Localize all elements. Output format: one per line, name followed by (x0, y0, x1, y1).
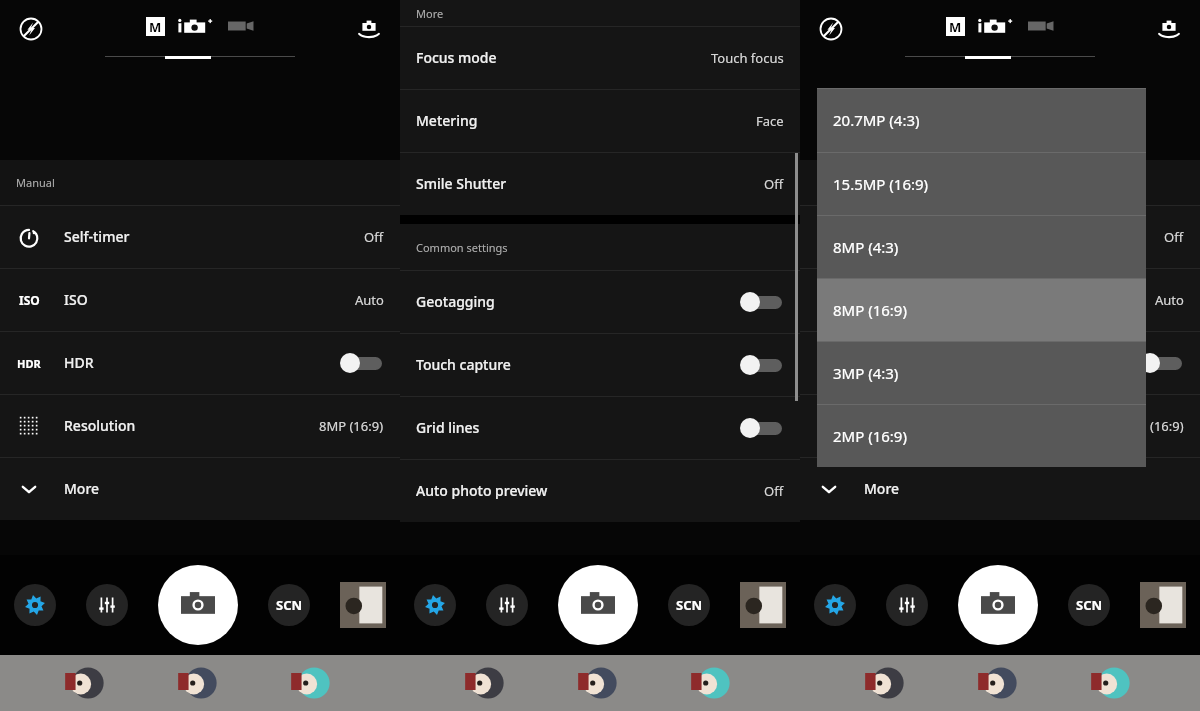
button[interactable]: Shutter (558, 565, 638, 645)
button[interactable]: Video (1028, 18, 1054, 34)
staticText: 15.5MP (16:9) (833, 174, 929, 194)
button[interactable]: Gallery (740, 582, 786, 628)
staticText: HDR (817, 356, 841, 371)
button[interactable]: M (146, 17, 165, 36)
staticText: Auto photo preview (416, 481, 548, 500)
staticText: Manual (816, 175, 855, 190)
staticText: Face (756, 112, 784, 130)
button[interactable]: SCN (268, 584, 310, 626)
staticText: M (949, 18, 962, 36)
button[interactable]: Focus mode (400, 26, 800, 89)
button[interactable]: SCN (668, 584, 710, 626)
button[interactable]: 20.7MP (4:3) (817, 88, 1146, 152)
button[interactable]: Touch capture (400, 333, 800, 396)
button[interactable]: ISO (800, 268, 1200, 331)
staticText: Touch focus (711, 49, 784, 67)
button[interactable]: Settings (14, 584, 56, 626)
button[interactable]: Superior auto (177, 16, 221, 36)
staticText: (16:9) (1150, 417, 1184, 435)
staticText: HDR (64, 353, 94, 372)
staticText: 8MP (16:9) (833, 300, 907, 320)
button[interactable]: Settings (814, 584, 856, 626)
button[interactable]: Auto photo preview (400, 459, 800, 522)
button[interactable]: Shutter (958, 565, 1038, 645)
button[interactable]: Off (800, 205, 1200, 268)
staticText: Smile Shutter (416, 174, 507, 193)
button[interactable]: 8MP (4:3) (817, 215, 1146, 278)
button[interactable]: Superior auto (977, 16, 1021, 36)
staticText: ISO (819, 292, 840, 308)
button[interactable]: Metering (400, 89, 800, 152)
staticText: 20.7MP (4:3) (833, 110, 920, 130)
button[interactable]: Switch camera (354, 14, 384, 44)
staticText: 8MP (4:3) (833, 237, 899, 257)
button[interactable]: Flash off (816, 14, 846, 44)
staticText: Off (1164, 228, 1184, 246)
staticText: Self-timer (64, 227, 130, 246)
staticText: More (416, 6, 444, 21)
staticText: More (864, 479, 900, 498)
button[interactable]: More (800, 457, 1200, 520)
staticText: ISO (19, 292, 40, 308)
button[interactable]: Adjust (86, 584, 128, 626)
staticText: SCN (276, 596, 303, 614)
button[interactable]: Resolution (0, 394, 400, 457)
staticText: Off (364, 228, 384, 246)
staticText: Resolution (64, 416, 136, 435)
staticText: Manual (16, 175, 55, 190)
button[interactable]: 3MP (4:3) (817, 341, 1146, 404)
staticText: Auto (355, 291, 384, 309)
button[interactable]: Adjust (886, 584, 928, 626)
button[interactable]: Gallery (1140, 582, 1186, 628)
button[interactable]: 2MP (16:9) (817, 404, 1146, 467)
staticText: M (149, 18, 162, 36)
button[interactable]: Geotagging (400, 270, 800, 333)
button[interactable]: Shutter (158, 565, 238, 645)
staticText: 2MP (16:9) (833, 426, 907, 446)
button[interactable]: Self-timer (0, 205, 400, 268)
staticText: Geotagging (416, 292, 495, 311)
staticText: SCN (1076, 596, 1103, 614)
button[interactable]: HDR (800, 331, 1200, 394)
staticText: More (64, 479, 100, 498)
button[interactable]: HDR (0, 331, 400, 394)
staticText: HDR (17, 356, 41, 371)
staticText: ISO (64, 290, 88, 309)
button[interactable]: 15.5MP (16:9) (817, 152, 1146, 215)
staticText: Focus mode (416, 48, 497, 67)
staticText: Off (764, 482, 784, 500)
button[interactable]: Flash off (16, 14, 46, 44)
button[interactable]: More (0, 457, 400, 520)
staticText: Grid lines (416, 418, 480, 437)
staticText: Off (764, 175, 784, 193)
button[interactable]: SCN (1068, 584, 1110, 626)
button[interactable]: (16:9) (800, 394, 1200, 457)
button[interactable]: M (946, 17, 965, 36)
button[interactable]: Smile Shutter (400, 152, 800, 215)
staticText: Metering (416, 111, 478, 130)
staticText: 8MP (16:9) (319, 417, 384, 435)
staticText: 3MP (4:3) (833, 363, 899, 383)
button[interactable]: Adjust (486, 584, 528, 626)
button[interactable]: 8MP (16:9) (817, 278, 1146, 341)
staticText: Common settings (416, 240, 508, 255)
staticText: SCN (676, 596, 703, 614)
button[interactable]: Grid lines (400, 396, 800, 459)
button[interactable]: Video (228, 18, 254, 34)
button[interactable]: ISO (0, 268, 400, 331)
staticText: Touch capture (416, 355, 511, 374)
staticText: Auto (1155, 291, 1184, 309)
button[interactable]: Gallery (340, 582, 386, 628)
button[interactable]: Settings (414, 584, 456, 626)
button[interactable]: Switch camera (1154, 14, 1184, 44)
